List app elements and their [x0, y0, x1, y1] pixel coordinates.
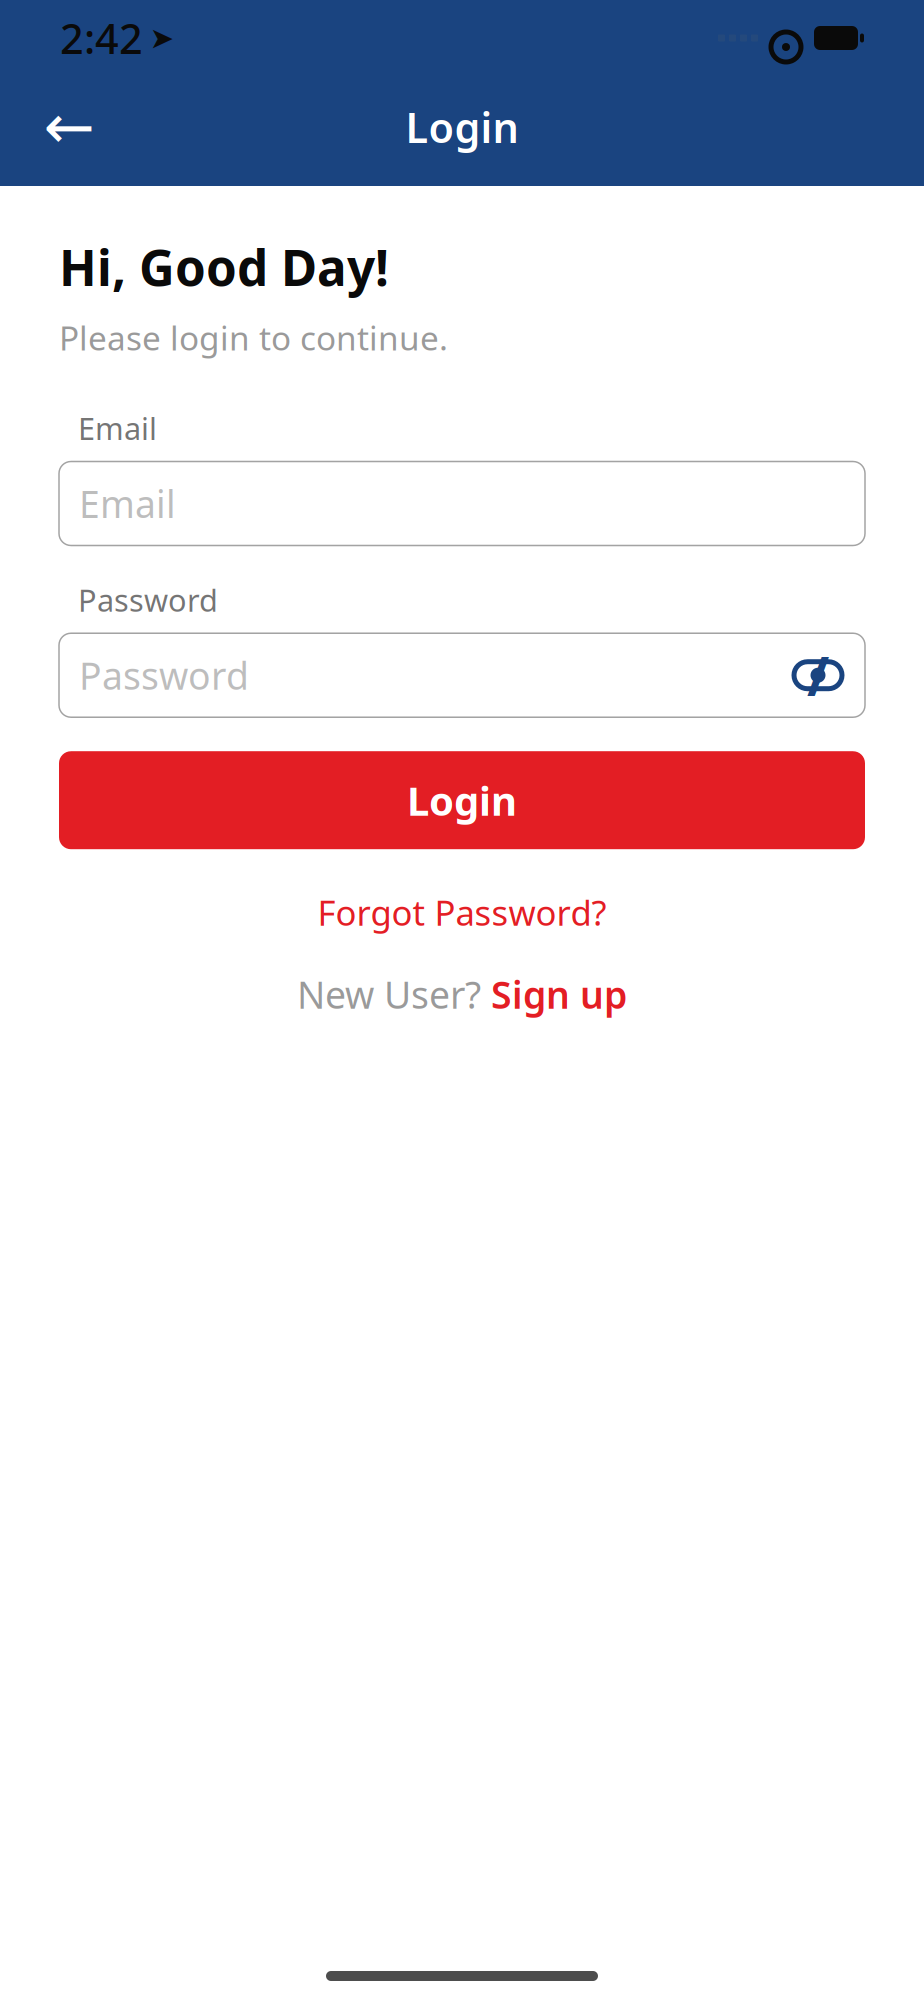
- staticText: ➤: [149, 21, 174, 55]
- staticText: Password: [79, 650, 249, 700]
- button[interactable]: Forgot Password?: [59, 883, 865, 941]
- staticText: New User?: [297, 969, 491, 1019]
- staticText: Email: [79, 479, 176, 528]
- staticText: Sign up: [491, 969, 627, 1019]
- staticText: 2:42: [60, 11, 143, 65]
- staticText: /: [807, 640, 829, 711]
- button[interactable]: Show password: [785, 646, 851, 704]
- button[interactable]: Back: [26, 94, 112, 160]
- staticText: Login: [407, 774, 517, 827]
- button[interactable]: New User?: [59, 965, 865, 1023]
- staticText: Login: [405, 100, 518, 154]
- staticText: Password: [78, 579, 218, 620]
- staticText: Please login to continue.: [59, 315, 448, 360]
- staticText: Forgot Password?: [317, 889, 606, 935]
- staticText: Hi, Good Day!: [59, 234, 389, 299]
- button[interactable]: Login: [59, 751, 865, 849]
- staticText: Email: [78, 408, 157, 448]
- staticText: ←: [43, 92, 94, 162]
